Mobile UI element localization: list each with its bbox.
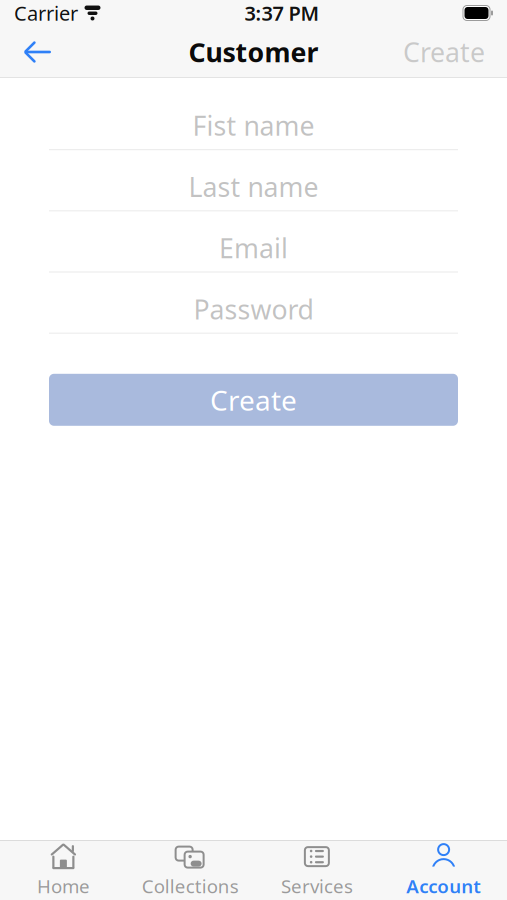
staticText: Last name bbox=[188, 169, 318, 204]
button[interactable]: Services bbox=[253, 841, 380, 900]
staticText: Services bbox=[281, 874, 353, 898]
staticText: Account bbox=[406, 874, 481, 898]
staticText: 3:37 PM bbox=[244, 0, 319, 26]
button[interactable]: Account bbox=[380, 841, 507, 900]
staticText: Home bbox=[37, 874, 90, 898]
staticText: Carrier bbox=[14, 0, 78, 26]
button[interactable]: Create bbox=[49, 374, 458, 426]
staticText: Create bbox=[210, 381, 297, 418]
staticText: Email bbox=[219, 230, 288, 266]
staticText: Fist name bbox=[192, 108, 314, 143]
button[interactable]: Collections bbox=[127, 841, 254, 900]
button[interactable]: Back bbox=[8, 26, 68, 78]
staticText: Create bbox=[403, 34, 485, 70]
staticText: Customer bbox=[188, 34, 318, 70]
staticText: Collections bbox=[142, 874, 239, 898]
staticText: Password bbox=[193, 291, 313, 327]
button[interactable]: Home bbox=[0, 841, 127, 900]
button[interactable]: Create bbox=[389, 26, 499, 78]
